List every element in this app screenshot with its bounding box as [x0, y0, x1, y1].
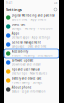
button[interactable]: General management: [4, 40, 59, 49]
button[interactable]: Apps: [4, 31, 59, 40]
button[interactable]: Accessibility: [4, 49, 59, 58]
staticText: Software update: [12, 59, 34, 62]
staticText: Status · Legal information: [12, 90, 46, 93]
staticText: Digital Wellbeing and parental: [12, 14, 55, 17]
button[interactable]: Tips and user manual: [4, 67, 59, 76]
staticText: Vision · Hearing · Interaction: [12, 54, 53, 57]
staticText: 9:41: [6, 1, 13, 5]
staticText: Apps: [12, 32, 19, 35]
staticText: Default apps · App settings: [12, 36, 50, 39]
staticText: Tips and user manual: [12, 68, 40, 71]
staticText: Download and install: [12, 63, 41, 66]
staticText: Useful tips · New features: [12, 72, 47, 75]
staticText: Accessibility: [12, 50, 28, 53]
staticText: Language · Date and time: [12, 45, 47, 48]
staticText: Screen time · App timers: [12, 18, 46, 21]
button[interactable]: Software update: [4, 58, 59, 67]
button[interactable]: Battery and device care: [4, 76, 59, 85]
staticText: About phone: [12, 86, 32, 89]
staticText: Storage · Memory · Protection: [12, 27, 53, 30]
button[interactable]: Search: [54, 8, 57, 11]
staticText: Power saving · Storage: [12, 81, 43, 84]
button[interactable]: Digital Wellbeing and parental: [4, 13, 59, 22]
button[interactable]: Device care: [4, 22, 59, 31]
staticText: Settings: [6, 7, 22, 12]
staticText: Battery and device care: [12, 77, 42, 80]
button[interactable]: About phone: [4, 85, 59, 94]
staticText: Device care: [12, 23, 26, 26]
staticText: LTE: [54, 1, 57, 5]
staticText: General management: [12, 41, 41, 44]
